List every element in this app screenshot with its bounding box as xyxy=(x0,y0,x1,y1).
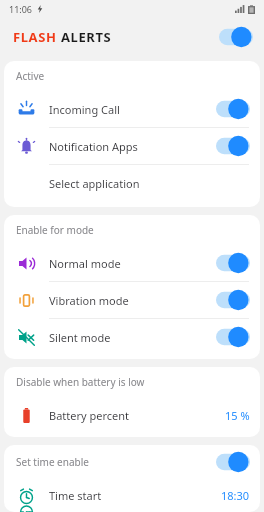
staticText: Incoming Call xyxy=(49,102,120,117)
staticText: Disable when battery is low xyxy=(16,375,145,389)
staticText: FLASH xyxy=(13,28,61,46)
button[interactable]: Toggle xyxy=(216,452,250,472)
button[interactable]: Toggle xyxy=(216,327,250,347)
button[interactable]: Time start xyxy=(4,479,260,512)
button[interactable]: Silent mode xyxy=(4,319,260,355)
button[interactable]: Toggle xyxy=(216,99,250,119)
button[interactable]: Toggle xyxy=(216,253,250,273)
button[interactable]: Incoming Call xyxy=(4,91,260,127)
staticText: Select application xyxy=(49,176,140,191)
button[interactable]: Notification Apps xyxy=(4,128,260,164)
staticText: Vibration mode xyxy=(49,293,129,308)
staticText: Active xyxy=(16,69,45,83)
staticText: Set time enable xyxy=(16,455,89,469)
staticText: 15 % xyxy=(225,408,250,423)
staticText: Normal mode xyxy=(49,256,121,271)
button[interactable]: Battery percent xyxy=(4,397,260,433)
button[interactable]: Toggle xyxy=(216,136,250,156)
staticText: Silent mode xyxy=(49,330,111,345)
button[interactable]: Normal mode xyxy=(4,245,260,281)
staticText: 11:06 xyxy=(9,3,33,15)
button[interactable]: Set time enable xyxy=(4,445,260,479)
staticText: Time start xyxy=(49,488,102,503)
button[interactable]: Select application xyxy=(4,165,260,201)
button[interactable]: Vibration mode xyxy=(4,282,260,318)
staticText: Notification Apps xyxy=(49,139,138,154)
staticText: Enable for mode xyxy=(16,223,94,237)
button[interactable]: Toggle xyxy=(216,290,250,310)
staticText: Battery percent xyxy=(49,408,130,423)
staticText: 18:30 xyxy=(221,488,250,503)
button[interactable]: Toggle xyxy=(219,27,253,47)
staticText: ALERTS xyxy=(61,28,112,46)
